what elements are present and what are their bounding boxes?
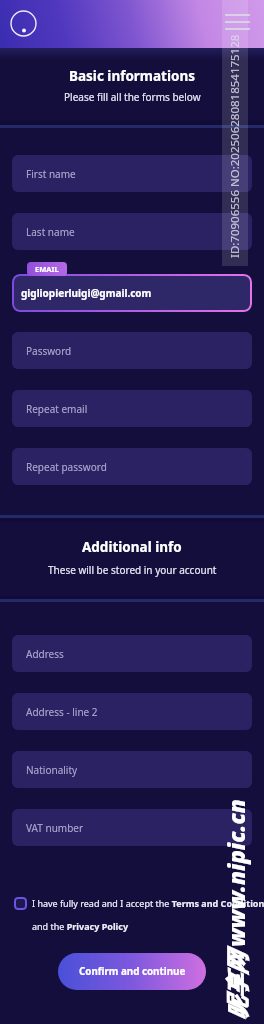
staticText: These will be stored in your account xyxy=(48,563,217,577)
staticText: VAT number xyxy=(26,821,84,835)
staticText: Repeat password xyxy=(26,460,107,474)
staticText: Basic informations xyxy=(69,67,195,85)
staticText: 昵享网 www.nipic.cn xyxy=(221,799,251,1020)
staticText: I have fully read and I accept the Terms… xyxy=(32,897,264,909)
button[interactable]: Address - line 2 xyxy=(12,693,252,730)
staticText: gigliopierluigi@gmail.com xyxy=(21,286,152,300)
staticText: Please fill all the forms below xyxy=(64,90,201,104)
button[interactable]: Repeat email xyxy=(12,390,252,427)
staticText: Additional info xyxy=(82,538,182,556)
button[interactable]: Last name xyxy=(12,213,252,250)
button[interactable]: Password xyxy=(12,332,252,369)
staticText: First name xyxy=(26,167,76,181)
staticText: Address xyxy=(26,647,64,661)
staticText: ID:70906556 NO:20250628081854175128 xyxy=(227,34,243,258)
button[interactable]: Nationality xyxy=(12,751,252,788)
button[interactable]: gigliopierluigi@gmail.com xyxy=(12,274,252,312)
button[interactable] xyxy=(14,897,27,910)
button[interactable]: First name xyxy=(12,155,252,192)
button[interactable]: Confirm and continue xyxy=(58,953,206,990)
button[interactable]: Address xyxy=(12,635,252,672)
staticText: Nationality xyxy=(26,763,78,777)
staticText: Password xyxy=(26,344,72,358)
button[interactable]: Repeat password xyxy=(12,448,252,485)
staticText: EMAIL xyxy=(35,264,59,274)
staticText: and the Privacy Policy xyxy=(32,920,129,932)
button[interactable]: VAT number xyxy=(12,809,252,846)
staticText: Last name xyxy=(26,225,75,239)
staticText: Confirm and continue xyxy=(79,965,186,978)
staticText: Repeat email xyxy=(26,402,88,416)
staticText: Address - line 2 xyxy=(26,705,98,719)
